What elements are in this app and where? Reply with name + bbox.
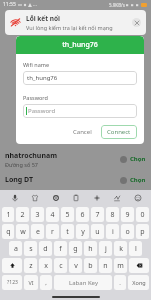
staticText: 3	[35, 210, 40, 220]
button[interactable]: 0	[136, 207, 149, 222]
staticText: q	[6, 227, 11, 237]
button[interactable]: Laban Key	[54, 275, 112, 290]
button[interactable]: Xong	[128, 275, 149, 290]
staticText: c	[59, 261, 63, 271]
button[interactable]: w	[16, 224, 29, 239]
staticText: k	[119, 244, 123, 254]
button[interactable]: Connect	[101, 125, 137, 139]
button[interactable]: x	[39, 258, 52, 273]
staticText: h	[88, 244, 93, 254]
button[interactable]: 2	[16, 207, 29, 222]
button[interactable]: k	[114, 241, 127, 256]
button[interactable]: m	[114, 258, 127, 273]
button[interactable]: d	[39, 241, 52, 256]
staticText: g	[73, 244, 78, 254]
button[interactable]: th_hung76	[23, 71, 137, 85]
button[interactable]: nhatrochunam	[0, 148, 151, 170]
button[interactable]: s	[24, 241, 37, 256]
staticText: t	[66, 227, 69, 237]
button[interactable]: v	[69, 258, 82, 273]
button[interactable]: a	[9, 241, 22, 256]
button[interactable]: 5	[61, 207, 74, 222]
staticText: r	[51, 227, 54, 237]
staticText: f	[59, 244, 62, 254]
staticText: Password	[28, 107, 56, 115]
staticText: 0	[140, 210, 145, 220]
button[interactable]: Themes	[28, 191, 41, 204]
button[interactable]: z	[24, 258, 37, 273]
button[interactable]: g	[69, 241, 82, 256]
button[interactable]: Emoji	[131, 191, 144, 204]
button[interactable]: .	[114, 275, 126, 290]
button[interactable]: 6	[76, 207, 89, 222]
button[interactable]: 7	[91, 207, 104, 222]
button[interactable]: y	[76, 224, 89, 239]
staticText: Cancel	[73, 128, 92, 136]
staticText: 6	[80, 210, 85, 220]
button[interactable]: VI	[24, 275, 38, 290]
button[interactable]: p	[136, 224, 149, 239]
button[interactable]: ,	[40, 275, 52, 290]
button[interactable]: ?123	[2, 275, 22, 290]
button[interactable]: t	[61, 224, 74, 239]
button[interactable]: q	[2, 224, 14, 239]
staticText: i	[112, 227, 114, 237]
staticText: th_hung76	[62, 40, 98, 50]
staticText: l	[135, 244, 137, 254]
button[interactable]: o	[121, 224, 134, 239]
button[interactable]: Cancel	[68, 125, 97, 139]
button[interactable]: c	[54, 258, 67, 273]
staticText: w	[20, 227, 26, 237]
button[interactable]: Password	[23, 104, 137, 118]
button[interactable]: Long DT	[0, 170, 151, 190]
button[interactable]: r	[46, 224, 59, 239]
button[interactable]: h	[84, 241, 97, 256]
button[interactable]: i	[106, 224, 119, 239]
staticText: 11:55	[3, 1, 16, 8]
button[interactable]: Voice input	[8, 191, 21, 204]
button[interactable]: Move keyboard	[90, 191, 103, 204]
button[interactable]: b	[84, 258, 97, 273]
staticText: Connect	[107, 128, 131, 136]
staticText: m	[117, 261, 124, 271]
button[interactable]: 9	[121, 207, 134, 222]
button[interactable]: f	[54, 241, 67, 256]
staticText: j	[105, 244, 107, 254]
staticText: Xong	[132, 279, 146, 286]
button[interactable]: 3	[31, 207, 44, 222]
button[interactable]: Dismiss notification	[132, 18, 141, 27]
staticText: ,	[45, 279, 47, 287]
staticText: 8	[110, 210, 115, 220]
staticText: Vui lòng kiểm tra lại kết nối mạng	[26, 24, 113, 31]
button[interactable]: Clipboard	[69, 191, 82, 204]
button[interactable]: Lỗi kết nối	[5, 10, 146, 35]
button[interactable]: Backspace	[129, 258, 149, 273]
staticText: ?123	[7, 279, 18, 286]
staticText: nhatrochunam	[5, 151, 57, 161]
button[interactable]: 1	[2, 207, 14, 222]
staticText: x	[44, 261, 48, 271]
staticText: Long DT	[5, 175, 34, 185]
button[interactable]: Handwriting	[110, 191, 123, 204]
button[interactable]: 4	[46, 207, 59, 222]
staticText: 5	[65, 210, 70, 220]
button[interactable]: Settings	[49, 191, 62, 204]
staticText: .	[119, 279, 121, 287]
staticText: th_hung76	[27, 74, 58, 82]
button[interactable]: u	[91, 224, 104, 239]
staticText: 4	[50, 210, 55, 220]
button[interactable]: Shift	[2, 258, 22, 273]
staticText: a	[14, 244, 18, 254]
staticText: z	[29, 261, 33, 271]
button[interactable]: l	[129, 241, 142, 256]
staticText: e	[36, 227, 40, 237]
button[interactable]: 8	[106, 207, 119, 222]
staticText: Laban Key	[69, 279, 98, 287]
button[interactable]: n	[99, 258, 112, 273]
staticText: v	[74, 261, 78, 271]
button[interactable]: j	[99, 241, 112, 256]
staticText: ...	[33, 1, 38, 8]
staticText: 5.9KB/s	[109, 2, 125, 8]
staticText: VI	[28, 279, 34, 286]
button[interactable]: e	[31, 224, 44, 239]
